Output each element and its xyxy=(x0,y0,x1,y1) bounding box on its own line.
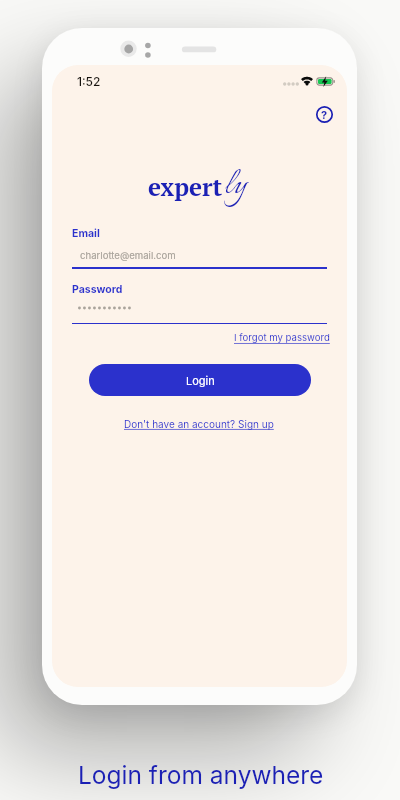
button[interactable]: Don't have an account? Sign up xyxy=(124,418,274,430)
button[interactable]: Login xyxy=(89,364,311,396)
staticText: ly xyxy=(224,161,247,211)
staticText: Login from anywhere xyxy=(78,760,324,790)
staticText: charlotte@email.com xyxy=(80,250,176,262)
button[interactable]: I forgot my password xyxy=(234,332,330,344)
staticText: Email xyxy=(72,227,100,240)
staticText: Don't have an account? Sign up xyxy=(124,418,274,430)
staticText: Password xyxy=(72,283,123,296)
staticText: ? xyxy=(321,108,328,121)
staticText: expert xyxy=(148,171,223,203)
staticText: Login xyxy=(186,374,215,387)
staticText: I forgot my password xyxy=(234,332,330,344)
staticText: 1:52 xyxy=(77,74,101,89)
button[interactable]: Help xyxy=(310,100,338,128)
